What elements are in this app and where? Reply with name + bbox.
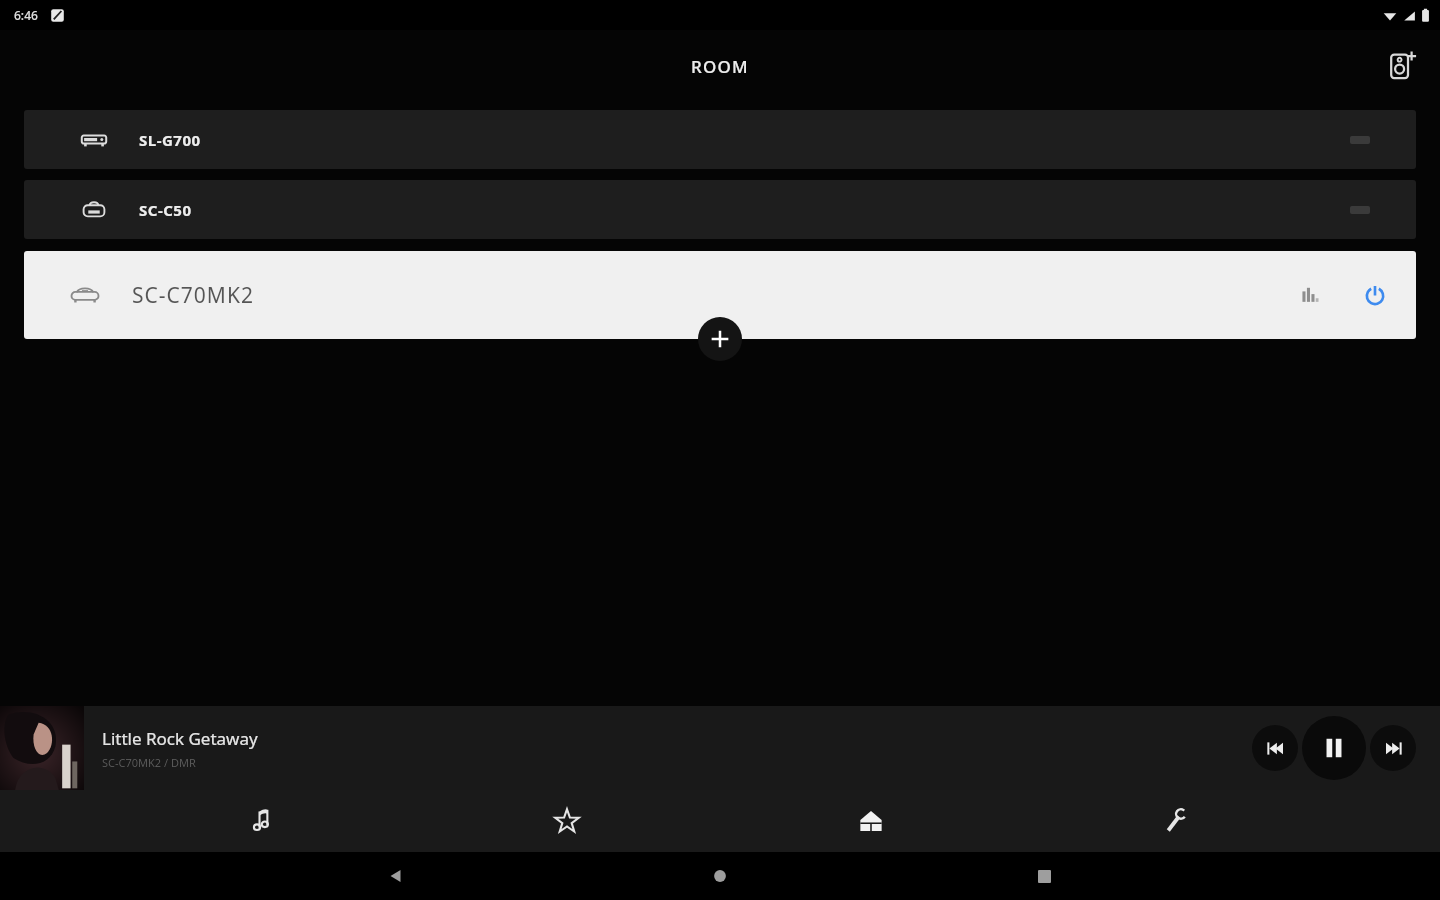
button[interactable]: SL-G700 <box>24 110 1416 169</box>
button[interactable]: Little Rock Getaway <box>0 706 1440 790</box>
button[interactable]: Back <box>372 852 420 900</box>
button[interactable]: SC-C50 <box>24 180 1416 239</box>
button[interactable]: Add device to room <box>698 317 742 361</box>
staticText: SC-C50 <box>139 200 192 220</box>
button[interactable]: Next track <box>1370 725 1416 771</box>
staticText: Little Rock Getaway <box>102 727 258 750</box>
button[interactable]: Power <box>1352 272 1398 318</box>
button[interactable]: SC-C70MK2 <box>24 251 1416 339</box>
button[interactable]: Pause <box>1302 716 1366 780</box>
staticText: SC-C70MK2 / DMR <box>102 755 196 770</box>
staticText: ROOM <box>691 55 749 78</box>
button[interactable]: Signal strength <box>1288 273 1332 317</box>
staticText: SC-C70MK2 <box>132 281 254 310</box>
button[interactable]: Home <box>696 852 744 900</box>
staticText: SL-G700 <box>139 130 201 150</box>
button[interactable]: Recent apps <box>1020 852 1068 900</box>
button[interactable]: Music <box>225 790 303 852</box>
button[interactable]: Previous track <box>1252 725 1298 771</box>
button[interactable]: Add speaker <box>1378 42 1426 90</box>
button[interactable]: Settings <box>1136 790 1214 852</box>
button[interactable]: Rooms <box>832 790 910 852</box>
button[interactable]: Favourites <box>528 790 606 852</box>
staticText: 6:46 <box>14 7 38 23</box>
